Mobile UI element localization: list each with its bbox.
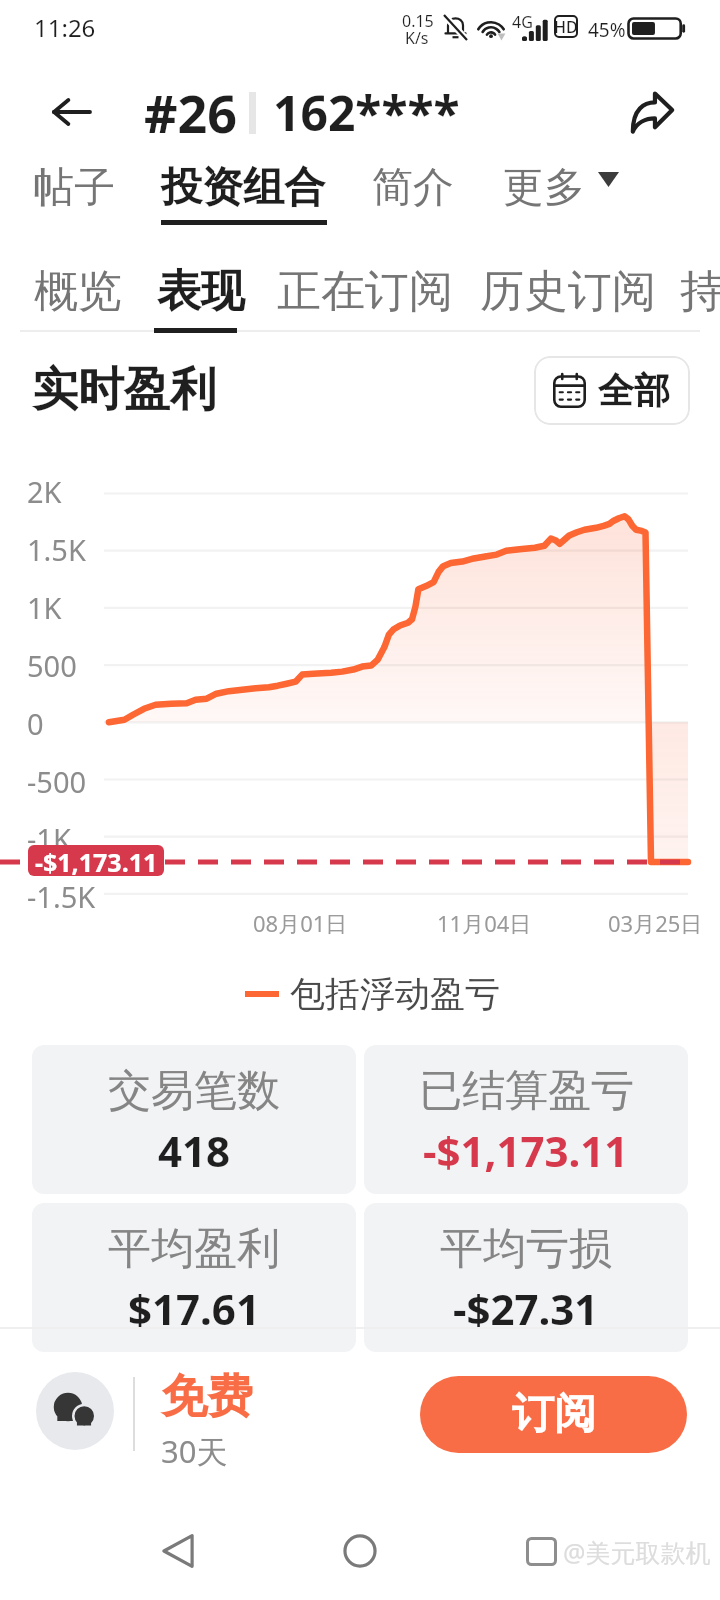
staticText: 实时盈利	[32, 361, 216, 419]
staticText: 1.5K	[27, 530, 86, 569]
staticText: 11:26	[34, 11, 96, 44]
button[interactable]: 交易笔数	[32, 1045, 356, 1194]
staticText: $17.61	[128, 1280, 260, 1337]
staticText: 45%	[588, 17, 626, 43]
staticText: 0	[27, 704, 44, 743]
staticText: -$27.31	[453, 1280, 599, 1337]
button[interactable]: 简介	[352, 148, 474, 228]
staticText: 4G	[512, 11, 533, 33]
staticText: 持	[680, 264, 720, 319]
staticText: 08月01日	[253, 908, 348, 938]
button[interactable]: 正在订阅	[257, 250, 473, 333]
staticText: 30天	[161, 1430, 228, 1472]
button[interactable]: 持	[660, 250, 720, 333]
button[interactable]: Home	[326, 1517, 394, 1585]
button[interactable]: 全部	[534, 356, 690, 425]
staticText: -1.5K	[27, 877, 96, 916]
staticText: 简介	[372, 162, 454, 214]
staticText: 平均亏损	[440, 1222, 612, 1276]
staticText: 交易笔数	[108, 1064, 280, 1118]
button[interactable]: More	[483, 148, 605, 228]
staticText: 表现	[157, 264, 245, 319]
staticText: 1K	[27, 588, 62, 627]
staticText: 订阅	[512, 1388, 596, 1441]
button[interactable]: 投资组合	[141, 148, 345, 228]
button[interactable]: 平均盈利	[32, 1203, 356, 1352]
staticText: -1K	[27, 819, 71, 858]
staticText: 全部	[598, 368, 670, 413]
staticText: 平均盈利	[108, 1222, 280, 1276]
staticText: 帖子	[33, 162, 115, 214]
staticText: -$1,173.11	[35, 845, 158, 876]
button[interactable]: Back	[144, 1517, 212, 1585]
button[interactable]: 平均亏损	[364, 1203, 688, 1352]
staticText: 已结算盈亏	[419, 1064, 634, 1118]
staticText: 投资组合	[161, 162, 325, 214]
staticText: 更多	[503, 162, 585, 214]
button[interactable]: 已结算盈亏	[364, 1045, 688, 1194]
staticText: 历史订阅	[480, 264, 656, 319]
button[interactable]: 历史订阅	[460, 250, 676, 333]
staticText: #26	[144, 77, 238, 148]
button[interactable]: Messages	[36, 1372, 114, 1450]
staticText: 正在订阅	[277, 264, 453, 319]
staticText: @美元取款机	[563, 1535, 711, 1569]
staticText: 0.15	[402, 10, 434, 32]
button[interactable]: Back	[35, 76, 107, 148]
staticText: 162****	[273, 80, 460, 145]
staticText: 500	[27, 646, 77, 685]
staticText: 免费	[161, 1368, 253, 1426]
staticText: 2K	[27, 472, 62, 511]
staticText: 03月25日	[608, 908, 703, 938]
staticText: HD	[554, 16, 578, 38]
button[interactable]: 概览	[14, 250, 142, 333]
button[interactable]: Share	[616, 76, 688, 148]
button[interactable]: 订阅	[420, 1376, 687, 1453]
staticText: 包括浮动盈亏	[290, 972, 500, 1016]
staticText: 418	[158, 1122, 231, 1179]
staticText: 概览	[34, 264, 122, 319]
button[interactable]: 表现	[137, 250, 265, 333]
staticText: -$1,173.11	[423, 1122, 629, 1179]
staticText: K/s	[405, 27, 429, 49]
button[interactable]: 帖子	[13, 148, 135, 228]
staticText: 11月04日	[437, 908, 532, 938]
staticText: -500	[27, 762, 87, 801]
